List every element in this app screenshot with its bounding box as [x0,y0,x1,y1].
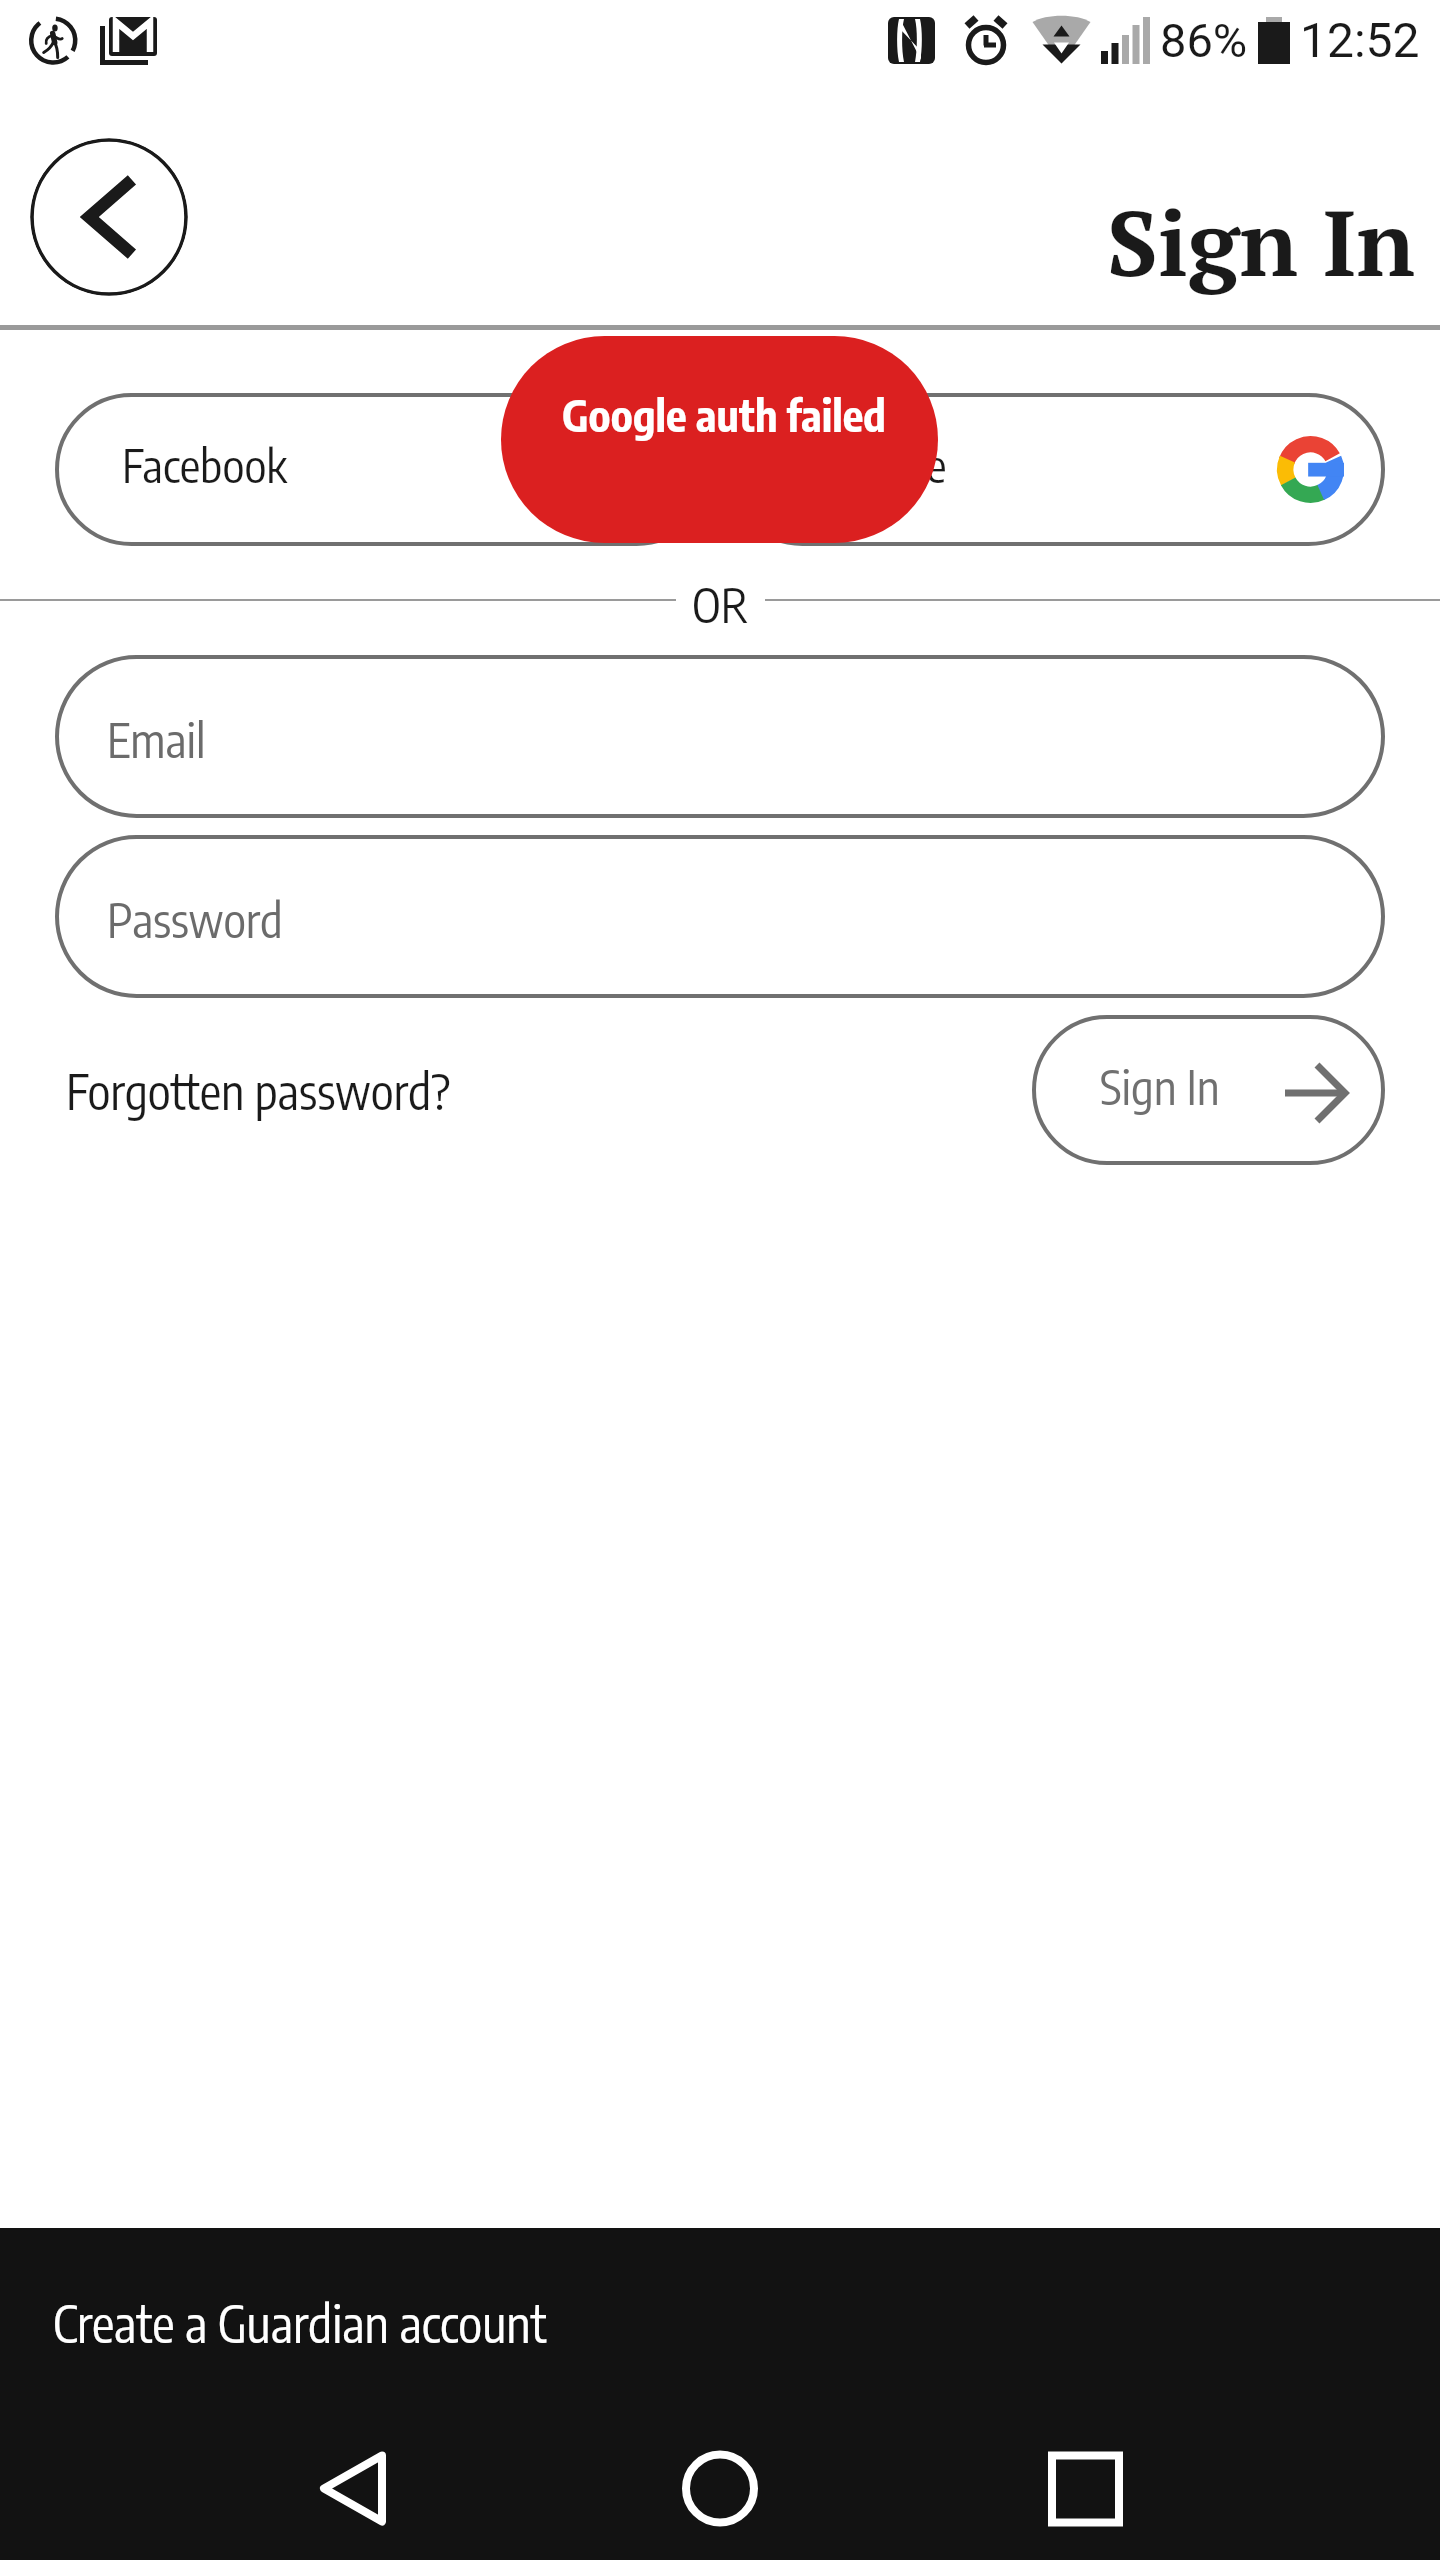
button[interactable]: Back [30,138,188,296]
button[interactable]: Google [726,393,1385,546]
button[interactable]: Sign In [1032,1015,1385,1165]
button[interactable]: Email [55,655,1385,818]
staticText: Sign In [1107,181,1415,302]
staticText: Create a Guardian account [53,2291,547,2354]
staticText: 86% [1160,13,1248,68]
button[interactable]: Google auth failed [501,336,938,543]
staticText: Password [107,890,283,949]
button[interactable]: Facebook [55,393,713,546]
staticText: Sign In [1100,1057,1220,1116]
staticText: Google [824,436,947,493]
staticText: Facebook [122,436,287,493]
button[interactable]: Create a Guardian account [0,2228,1440,2428]
button[interactable]: Forgotten password? [66,1061,451,1121]
staticText: Email [107,710,206,769]
staticText: OR [692,575,749,625]
staticText: 12:52 [1300,12,1420,68]
button[interactable]: Password [55,835,1385,998]
staticText: Google auth failed [562,388,886,442]
